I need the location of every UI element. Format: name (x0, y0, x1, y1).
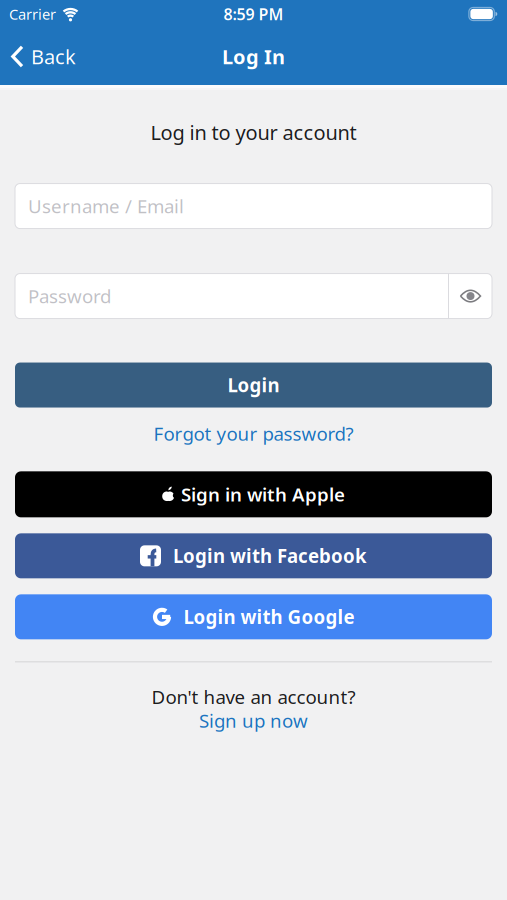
staticText: Log In (222, 43, 285, 70)
staticText: Carrier (9, 4, 56, 24)
staticText: Forgot your password? (153, 421, 353, 446)
button[interactable]: Sign up now (199, 708, 308, 733)
staticText: Login with Facebook (173, 543, 367, 568)
button[interactable]: Password (15, 274, 448, 319)
staticText: Login (227, 373, 279, 397)
staticText: Sign up now (199, 708, 308, 733)
button[interactable]: Login with Google (15, 594, 492, 639)
staticText: Log in to your account (150, 119, 356, 146)
button[interactable]: Sign in with Apple (15, 471, 492, 517)
staticText: Password (28, 284, 111, 308)
staticText: 8:59 PM (223, 3, 283, 25)
staticText: Don't have an account? (151, 684, 355, 709)
button[interactable]: Back (0, 43, 84, 70)
button[interactable]: Login with Facebook (15, 533, 492, 578)
button[interactable]: Username / Email (15, 184, 492, 229)
button[interactable]: Forgot your password? (153, 421, 353, 446)
staticText: Sign in with Apple (181, 482, 345, 507)
staticText: Back (31, 43, 76, 70)
staticText: Username / Email (28, 194, 184, 218)
button[interactable]: Login (15, 363, 492, 408)
staticText: Login with Google (183, 604, 354, 629)
button[interactable]: Show password (449, 274, 492, 319)
